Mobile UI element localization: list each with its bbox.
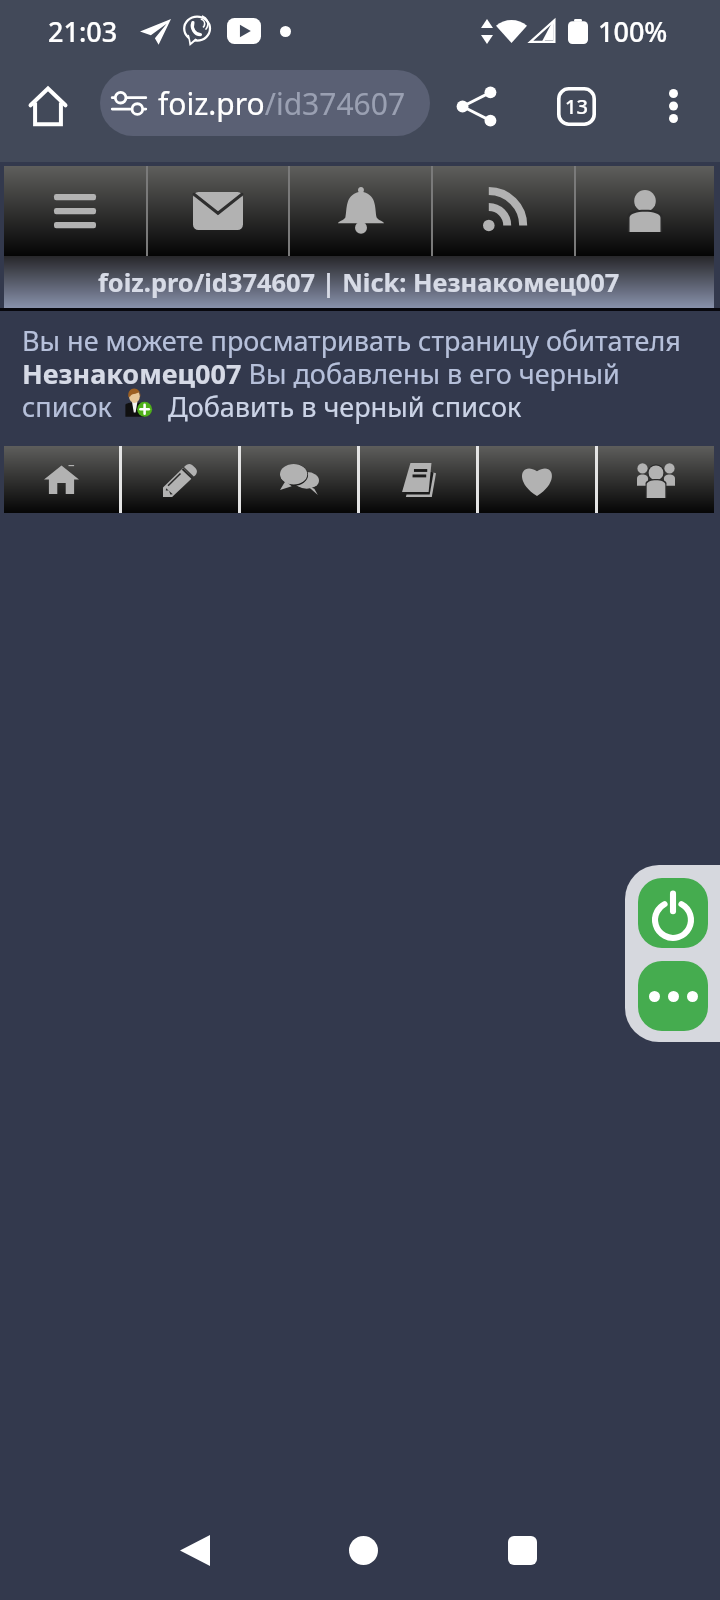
staticText: foiz.pro/id374607	[158, 83, 406, 124]
button[interactable]: Feed	[433, 166, 574, 256]
button[interactable]: More	[638, 961, 708, 1031]
button[interactable]: Book	[360, 446, 476, 513]
button[interactable]: Notifications	[290, 166, 431, 256]
button[interactable]: Recents	[482, 1510, 562, 1590]
button[interactable]: Power	[638, 878, 708, 948]
button[interactable]: foiz.pro/id374607	[100, 70, 430, 136]
button[interactable]: Share	[440, 70, 512, 142]
button[interactable]: Home	[4, 446, 119, 513]
button[interactable]: Home	[323, 1510, 403, 1590]
button[interactable]: Back	[155, 1510, 235, 1590]
button[interactable]: Profile	[576, 166, 714, 256]
staticText: foiz.pro/id374607 | Nick: Незнакомец007	[98, 265, 620, 300]
staticText: 100%	[598, 13, 668, 50]
button[interactable]: Mail	[148, 166, 288, 256]
button[interactable]: Menu	[4, 166, 146, 256]
button[interactable]: Home	[12, 70, 84, 142]
staticText: 21:03	[48, 13, 118, 50]
button[interactable]: Write	[122, 446, 238, 513]
button[interactable]: Friends	[598, 446, 714, 513]
staticText: Вы не можете просматривать страницу обит…	[22, 322, 681, 425]
button[interactable]: Likes	[479, 446, 595, 513]
button[interactable]: Tabs	[540, 70, 612, 142]
button[interactable]: More options	[637, 70, 709, 142]
staticText: 13	[565, 93, 588, 120]
button[interactable]: Chat	[241, 446, 357, 513]
